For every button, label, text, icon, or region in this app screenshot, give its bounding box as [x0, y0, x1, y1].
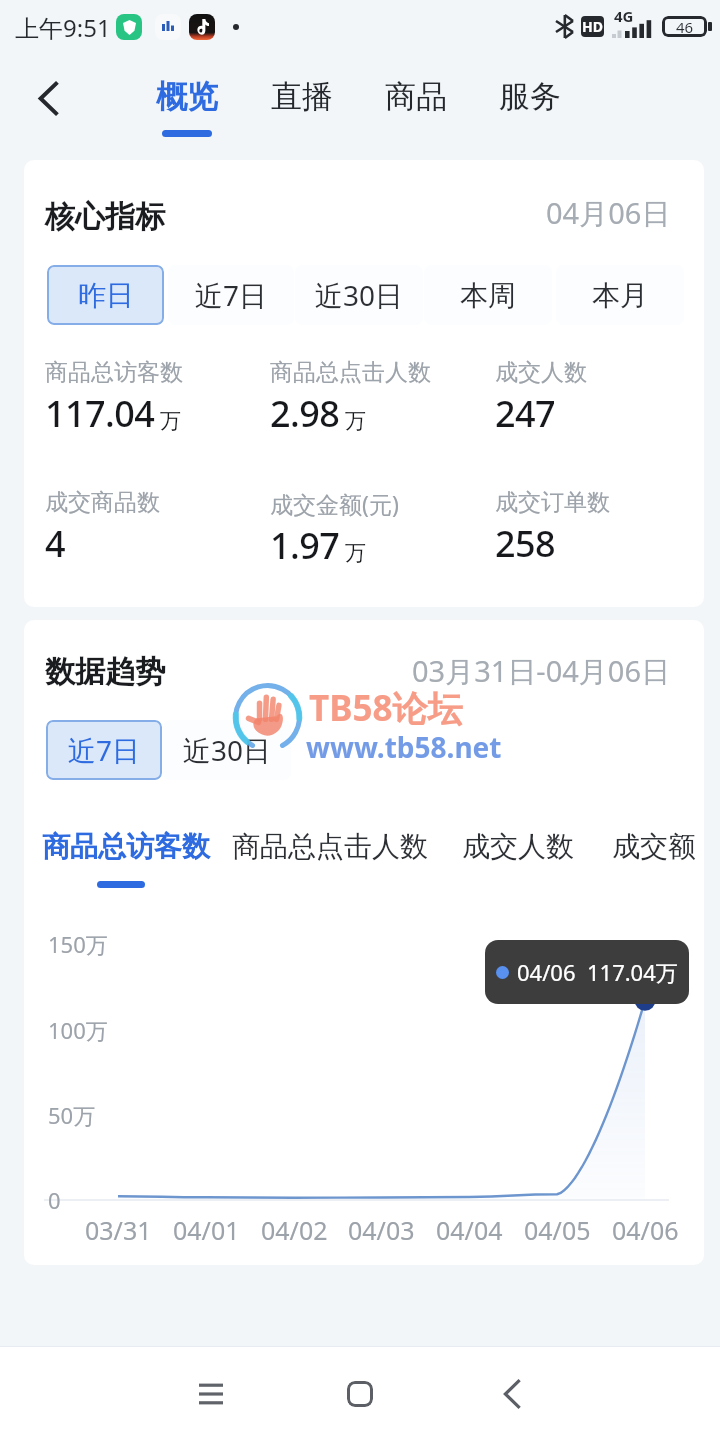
staticText: 昨日 [78, 278, 134, 313]
button[interactable]: 服务 [475, 77, 585, 149]
staticText: 100万 [48, 1015, 108, 1045]
staticText: 商品总点击人数 [232, 829, 428, 864]
staticText: 上午9:51 [15, 11, 111, 44]
staticText: 0 [48, 1185, 61, 1215]
staticText: 成交人数 [495, 358, 587, 387]
staticText: 服务 [499, 77, 561, 116]
button[interactable]: 近7日 [46, 720, 162, 780]
staticText: 概览 [156, 77, 218, 116]
staticText: 04/02 [261, 1213, 328, 1247]
button[interactable]: 商品总点击人数 [220, 829, 440, 877]
staticText: 近30日 [183, 731, 272, 769]
button[interactable]: 直播 [247, 77, 357, 149]
staticText: 1.97 [270, 521, 340, 570]
button[interactable]: Home [335, 1369, 385, 1419]
staticText: TB58论坛 [309, 684, 463, 732]
staticText: www.tb58.net [306, 728, 502, 766]
staticText: 50万 [48, 1100, 96, 1130]
staticText: 成交人数 [462, 829, 574, 864]
button[interactable]: 昨日 [47, 265, 164, 325]
staticText: 近7日 [68, 731, 141, 769]
button[interactable]: 商品 [361, 77, 471, 149]
button[interactable]: 本周 [424, 265, 552, 325]
staticText: 46 [676, 17, 694, 37]
button[interactable]: 概览 [132, 77, 242, 149]
staticText: 成交额 [612, 829, 696, 864]
staticText: HD [582, 17, 603, 36]
staticText: 近30日 [315, 276, 404, 314]
button[interactable]: 成交人数 [408, 829, 628, 877]
staticText: 核心指标 [45, 198, 165, 236]
button[interactable]: 商品总访客数 [24, 829, 236, 877]
staticText: 117.04 [45, 389, 155, 438]
staticText: 成交订单数 [495, 488, 610, 517]
staticText: 商品 [385, 77, 447, 116]
staticText: 03月31日-04月06日 [412, 651, 671, 691]
staticText: 商品总访客数 [45, 358, 183, 387]
button[interactable]: Recent apps [186, 1369, 236, 1419]
button[interactable]: Back [487, 1369, 537, 1419]
staticText: 数据趋势 [45, 653, 165, 691]
staticText: 150万 [48, 929, 108, 959]
staticText: 4G [614, 6, 634, 26]
staticText: 本月 [592, 278, 648, 313]
staticText: 成交商品数 [45, 488, 160, 517]
staticText: 商品总点击人数 [270, 358, 431, 387]
staticText: 03/31 [85, 1213, 152, 1247]
staticText: 04/04 [436, 1213, 503, 1247]
staticText: 万 [345, 540, 366, 566]
staticText: 万 [160, 408, 181, 434]
staticText: 04/05 [524, 1213, 591, 1247]
staticText: 04/06 [612, 1213, 679, 1247]
staticText: 成交金额(元) [270, 488, 399, 519]
staticText: 2.98 [270, 389, 340, 438]
button[interactable]: 成交额 [544, 829, 704, 877]
staticText: 04/01 [173, 1213, 240, 1247]
staticText: 近7日 [195, 276, 268, 314]
staticText: 04月06日 [546, 193, 671, 233]
staticText: 直播 [271, 77, 333, 116]
staticText: 4 [45, 519, 65, 568]
staticText: 万 [345, 408, 366, 434]
staticText: 本周 [460, 278, 516, 313]
button[interactable]: 近7日 [168, 265, 294, 325]
staticText: 04/06 117.04万 [517, 957, 678, 987]
button[interactable]: Back [21, 70, 77, 126]
staticText: 247 [495, 389, 555, 438]
staticText: 04/03 [348, 1213, 415, 1247]
staticText: 商品总访客数 [42, 829, 210, 864]
button[interactable]: 本月 [556, 265, 684, 325]
staticText: 258 [495, 519, 555, 568]
button[interactable]: 近30日 [295, 265, 423, 325]
button[interactable]: 近30日 [163, 720, 291, 780]
